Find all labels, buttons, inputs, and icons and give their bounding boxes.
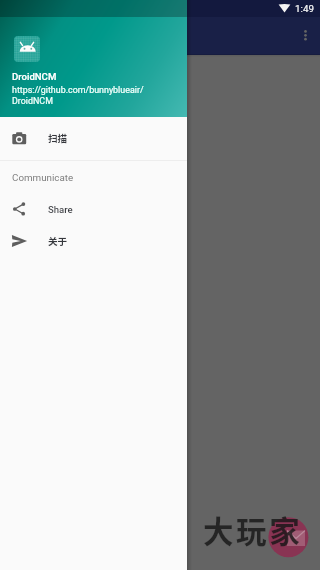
staticText: DroidNCM (12, 71, 57, 82)
staticText: DroidNCM (12, 96, 53, 106)
staticText: 扫描 (48, 131, 68, 145)
button[interactable]: More options (294, 22, 317, 48)
button[interactable]: Share (0, 193, 187, 225)
button[interactable]: 关于 (0, 225, 187, 257)
staticText: 1:49 (295, 3, 314, 14)
button[interactable]: 扫描 (0, 122, 187, 154)
staticText: 关于 (48, 234, 68, 248)
staticText: 大玩家 (203, 508, 303, 552)
staticText: Communicate (12, 172, 74, 183)
staticText: https://github.com/bunnyblueair/ (12, 85, 144, 95)
button[interactable]: DroidNCM navigation header (0, 0, 187, 117)
staticText: Share (48, 204, 73, 215)
